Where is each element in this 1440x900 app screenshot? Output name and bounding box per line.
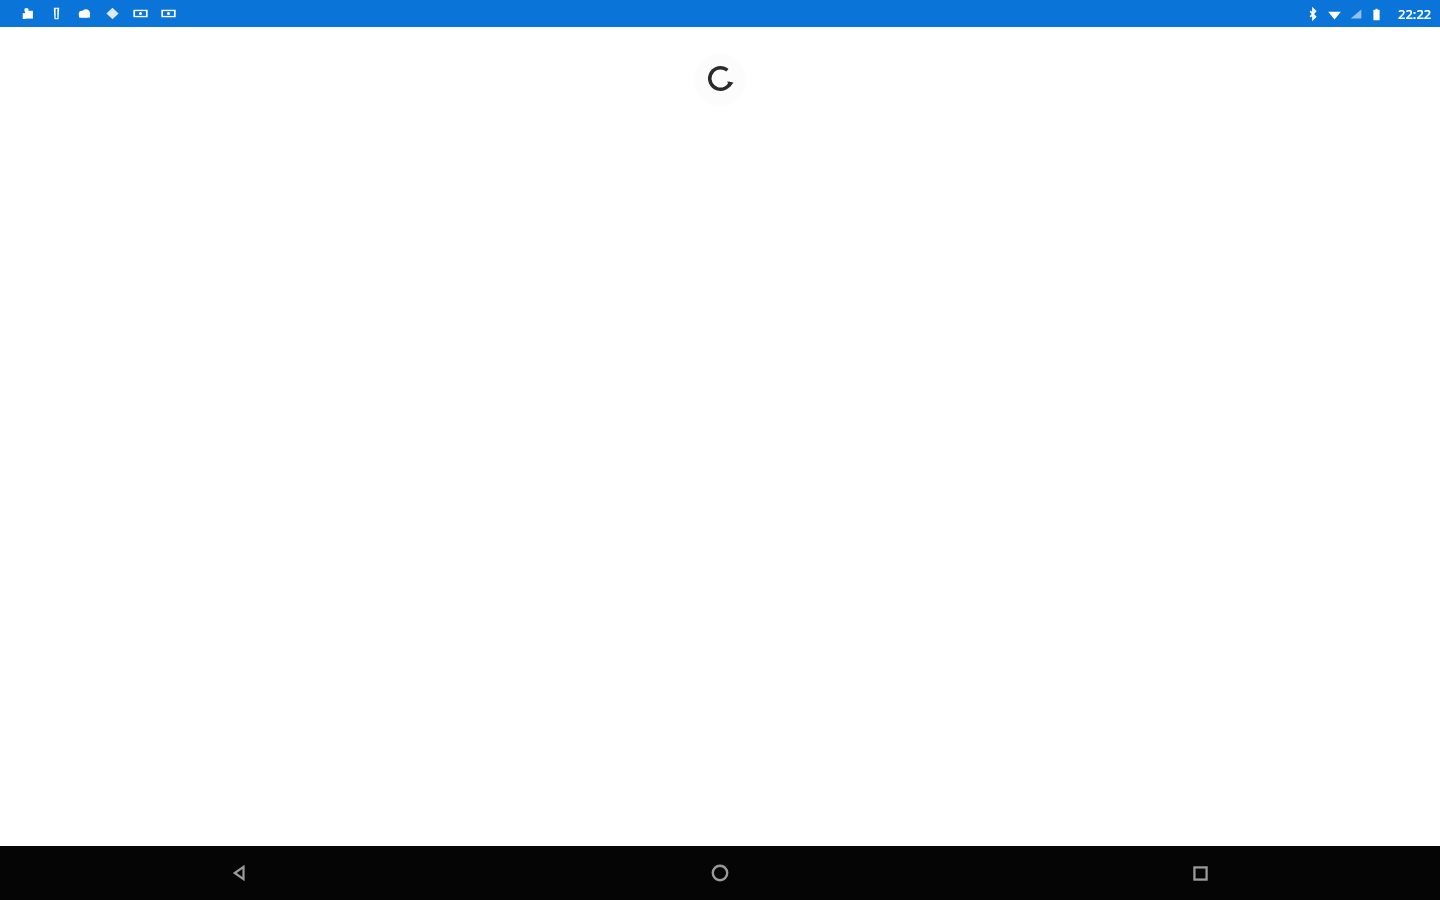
button[interactable]: Back [0, 846, 480, 900]
other: Refreshing [692, 50, 748, 106]
button[interactable]: Recents [960, 846, 1440, 900]
staticText: 22:22 [1398, 5, 1432, 23]
button[interactable]: Home [480, 846, 960, 900]
